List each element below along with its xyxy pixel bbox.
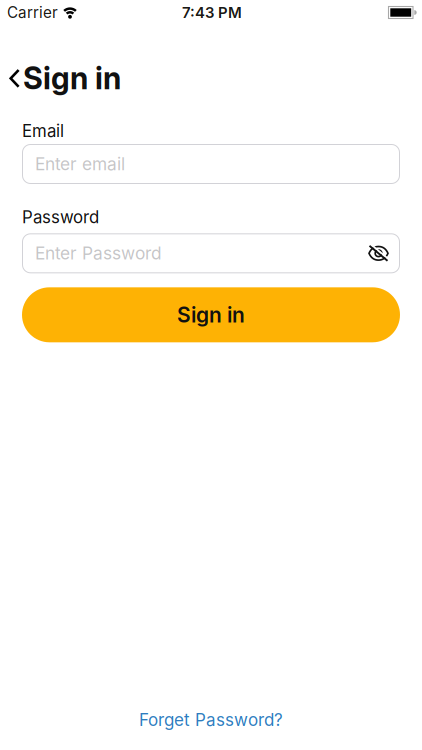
staticText: Carrier (7, 3, 58, 22)
staticText: 7:43 PM (182, 3, 242, 21)
button[interactable]: Sign in (22, 287, 400, 342)
staticText: Password (22, 207, 99, 227)
staticText: Email (22, 121, 64, 141)
button[interactable]: Forget Password? (139, 709, 283, 730)
staticText: Enter email (35, 153, 125, 174)
button[interactable]: Enter email (22, 144, 400, 184)
button[interactable]: Back (0, 65, 20, 92)
staticText: Sign in (23, 60, 121, 97)
button[interactable]: Enter Password (22, 233, 400, 273)
staticText: Sign in (177, 302, 245, 327)
staticText: Forget Password? (139, 709, 283, 730)
button[interactable]: Show password (368, 245, 389, 261)
staticText: Enter Password (35, 243, 162, 264)
